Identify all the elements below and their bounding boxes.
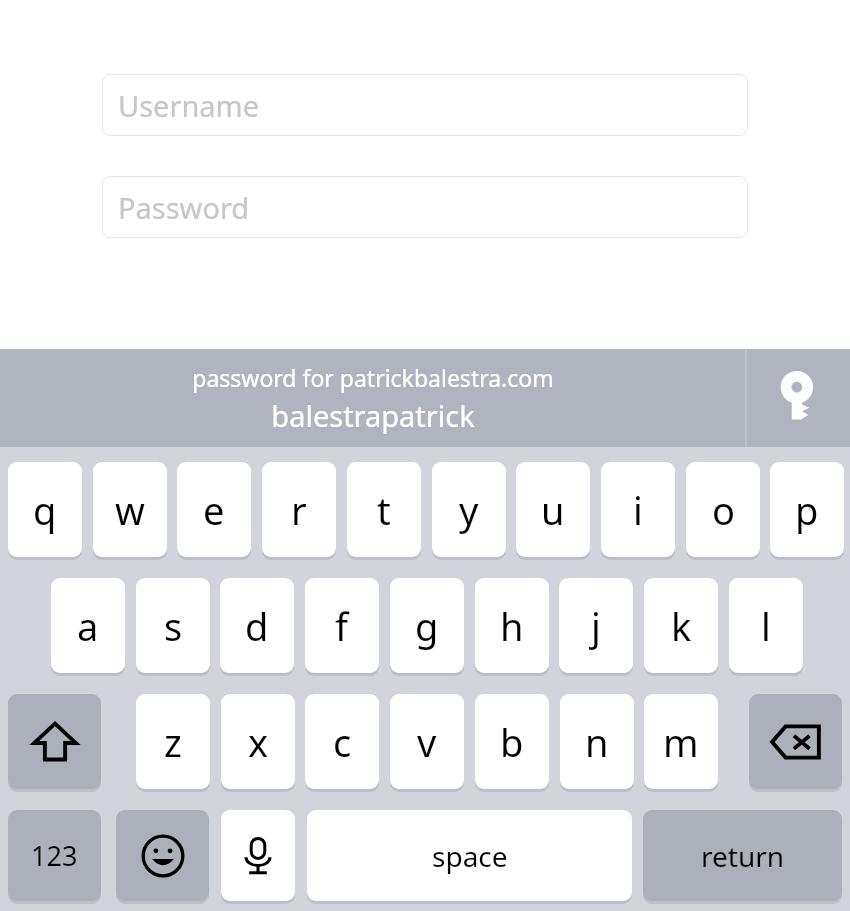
button[interactable]: j xyxy=(559,578,633,673)
staticText: g xyxy=(415,600,439,652)
staticText: f xyxy=(335,600,349,652)
button[interactable]: l xyxy=(729,578,803,673)
button[interactable]: m xyxy=(644,694,718,789)
staticText: p xyxy=(795,484,819,536)
staticText: m xyxy=(663,716,699,768)
button[interactable]: z xyxy=(136,694,210,789)
button[interactable]: Shift xyxy=(8,694,101,789)
button[interactable]: q xyxy=(8,462,82,557)
button[interactable]: o xyxy=(686,462,760,557)
button[interactable]: r xyxy=(262,462,336,557)
staticText: a xyxy=(77,600,99,652)
button[interactable]: Passwords xyxy=(747,349,850,447)
button[interactable]: d xyxy=(220,578,294,673)
button[interactable]: password for patrickbalestra.com xyxy=(0,349,745,447)
button[interactable]: x xyxy=(221,694,295,789)
button[interactable]: b xyxy=(475,694,549,789)
staticText: c xyxy=(333,716,352,768)
button[interactable]: n xyxy=(560,694,634,789)
button[interactable]: return xyxy=(643,810,842,901)
staticText: z xyxy=(164,716,182,768)
button[interactable]: a xyxy=(51,578,125,673)
button[interactable]: 123 xyxy=(8,810,101,901)
button[interactable]: Backspace xyxy=(749,694,842,789)
staticText: j xyxy=(591,600,601,652)
staticText: balestrapatrick xyxy=(271,396,475,435)
staticText: u xyxy=(541,484,565,536)
staticText: i xyxy=(633,484,643,536)
button[interactable]: y xyxy=(432,462,506,557)
staticText: e xyxy=(203,484,225,536)
staticText: h xyxy=(500,600,524,652)
button[interactable]: g xyxy=(390,578,464,673)
staticText: y xyxy=(459,484,479,536)
staticText: s xyxy=(164,600,183,652)
staticText: b xyxy=(500,716,524,768)
button[interactable]: u xyxy=(516,462,590,557)
staticText: 123 xyxy=(31,837,78,874)
staticText: l xyxy=(761,600,771,652)
button[interactable]: v xyxy=(390,694,464,789)
button[interactable]: w xyxy=(93,462,167,557)
staticText: Password xyxy=(118,188,250,227)
button[interactable]: t xyxy=(347,462,421,557)
button[interactable]: i xyxy=(601,462,675,557)
staticText: w xyxy=(115,484,145,536)
button[interactable]: f xyxy=(305,578,379,673)
button[interactable]: s xyxy=(136,578,210,673)
staticText: v xyxy=(417,716,437,768)
staticText: d xyxy=(245,600,269,652)
button[interactable]: Username xyxy=(102,74,748,136)
button[interactable]: k xyxy=(644,578,718,673)
button[interactable]: space xyxy=(307,810,632,901)
staticText: o xyxy=(712,484,735,536)
staticText: k xyxy=(671,600,692,652)
staticText: return xyxy=(701,837,785,875)
staticText: q xyxy=(33,484,57,536)
button[interactable]: e xyxy=(177,462,251,557)
staticText: password for patrickbalestra.com xyxy=(192,362,554,393)
staticText: Username xyxy=(118,86,260,125)
button[interactable]: c xyxy=(305,694,379,789)
staticText: r xyxy=(291,484,307,536)
staticText: x xyxy=(248,716,269,768)
button[interactable]: Dictation xyxy=(221,810,295,901)
staticText: space xyxy=(432,837,508,875)
staticText: n xyxy=(585,716,609,768)
button[interactable]: Password xyxy=(102,176,748,238)
button[interactable]: Emoji xyxy=(116,810,209,901)
button[interactable]: h xyxy=(475,578,549,673)
staticText: t xyxy=(377,484,391,536)
button[interactable]: p xyxy=(770,462,844,557)
